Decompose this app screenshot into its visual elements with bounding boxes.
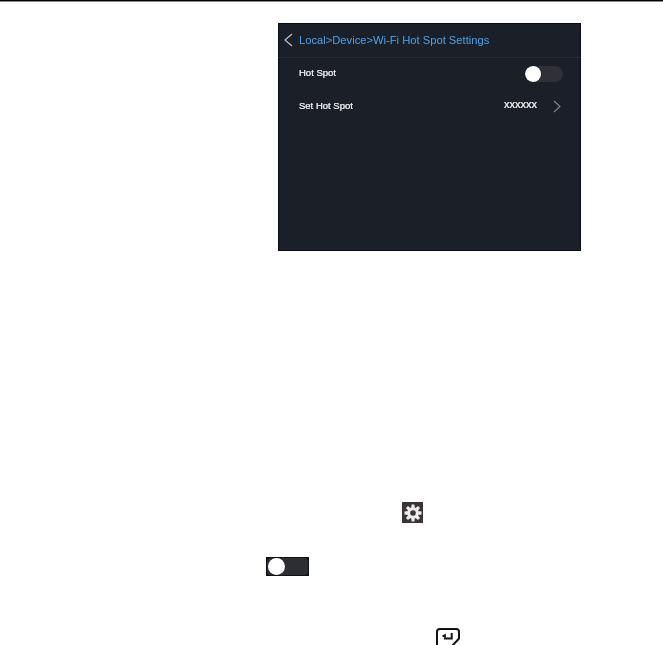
button[interactable]: Settings xyxy=(402,502,423,523)
button[interactable]: Return xyxy=(436,628,460,645)
staticText: xxxxxx xyxy=(504,98,537,110)
button[interactable]: Set Hot Spot xyxy=(299,89,560,121)
staticText: Hot Spot xyxy=(299,67,336,78)
button[interactable]: Hot Spot toggle xyxy=(525,66,563,82)
button[interactable]: Hot Spot xyxy=(299,56,563,88)
other: Back xyxy=(285,34,292,46)
button[interactable]: Back xyxy=(278,23,581,57)
button[interactable]: Toggle xyxy=(266,557,309,576)
staticText: Local>Device>Wi-Fi Hot Spot Settings xyxy=(299,34,490,47)
staticText: Set Hot Spot xyxy=(299,100,353,111)
